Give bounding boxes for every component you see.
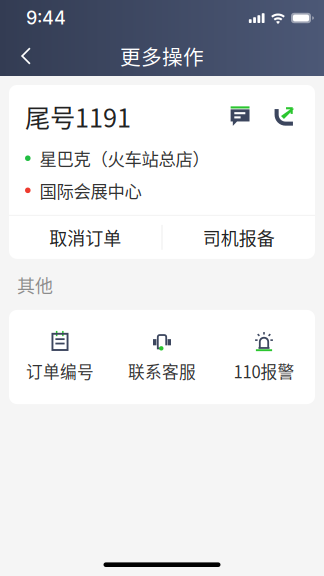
staticText: 联系客服	[128, 359, 196, 383]
button[interactable]: 订单编号	[9, 331, 111, 383]
staticText: 取消订单	[49, 224, 121, 250]
staticText: 尾号1191	[25, 98, 131, 135]
staticText: 司机报备	[203, 224, 275, 250]
button[interactable]: 拨打电话	[274, 106, 299, 126]
staticText: 其他	[17, 272, 53, 298]
button[interactable]: 110报警	[213, 331, 315, 383]
staticText: 110报警	[233, 359, 294, 383]
staticText: 订单编号	[26, 359, 94, 383]
button[interactable]: 司机报备	[162, 216, 315, 259]
button[interactable]: 取消订单	[9, 216, 161, 259]
button[interactable]: 发送消息	[230, 106, 274, 126]
staticText: 9:44	[26, 7, 66, 29]
button[interactable]: 返回	[5, 36, 47, 76]
button[interactable]: 联系客服	[111, 331, 213, 383]
staticText: 更多操作	[120, 41, 204, 71]
staticText: 星巴克（火车站总店）	[40, 146, 210, 171]
staticText: 国际会展中心	[40, 178, 142, 203]
